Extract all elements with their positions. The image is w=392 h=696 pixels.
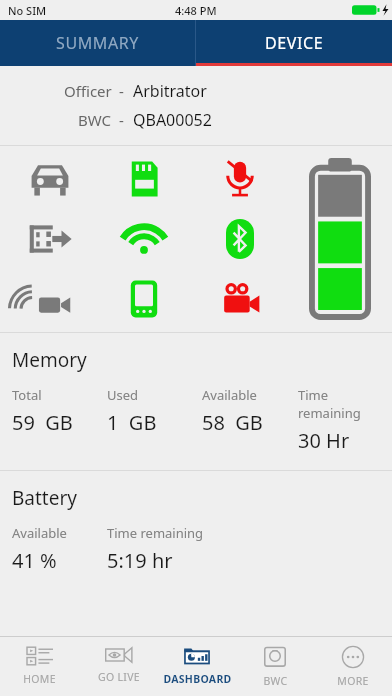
staticText: DASHBOARD <box>163 672 232 686</box>
other: Go Live <box>105 645 133 665</box>
button[interactable]: Dashboard <box>158 637 236 696</box>
staticText: 59 GB <box>12 409 73 436</box>
staticText: QBA00052 <box>133 109 212 131</box>
staticText: Arbitrator <box>133 80 207 102</box>
staticText: Time remaining <box>298 386 392 422</box>
staticText: MORE <box>337 674 369 688</box>
staticText: No SIM <box>8 3 47 18</box>
staticText: 5:19 hr <box>107 547 173 574</box>
staticText: Battery <box>12 485 77 511</box>
staticText: 58 GB <box>202 409 263 436</box>
staticText: GO LIVE <box>98 670 140 684</box>
staticText: 1 GB <box>107 409 157 436</box>
button[interactable]: SUMMARY <box>0 20 195 66</box>
staticText: 4:48 PM <box>175 3 217 18</box>
staticText: Total <box>12 386 42 404</box>
staticText: BWC <box>78 110 112 130</box>
staticText: Available <box>202 386 257 404</box>
staticText: Time remaining <box>107 524 204 542</box>
staticText: Available <box>12 524 67 542</box>
staticText: 30 Hr <box>298 427 350 454</box>
other: Dashboard <box>183 645 211 667</box>
staticText: DEVICE <box>265 32 324 54</box>
button[interactable]: BWC <box>236 637 314 696</box>
button[interactable]: More <box>314 637 392 696</box>
button[interactable]: Home <box>0 637 79 696</box>
staticText: HOME <box>23 672 56 686</box>
staticText: 41 % <box>12 547 57 574</box>
staticText: Officer <box>64 81 112 101</box>
other: BWC <box>264 645 286 669</box>
staticText: SUMMARY <box>56 32 139 54</box>
button[interactable]: Go Live <box>79 637 158 696</box>
other: Home <box>27 645 53 667</box>
staticText: BWC <box>263 674 288 688</box>
staticText: - <box>119 110 124 130</box>
staticText: - <box>119 81 124 101</box>
staticText: Memory <box>12 347 87 373</box>
staticText: Used <box>107 386 139 404</box>
other: More <box>341 645 365 669</box>
button[interactable]: DEVICE <box>196 20 392 66</box>
